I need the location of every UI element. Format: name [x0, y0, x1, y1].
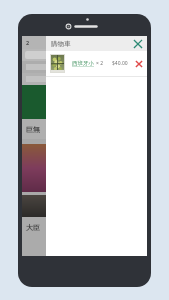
staticText: 西班牙小黃瓜: [72, 60, 96, 67]
button[interactable]: 西班牙小黃瓜: [46, 51, 147, 76]
staticText: 購物車: [51, 40, 71, 48]
staticText: × 2: [96, 60, 104, 67]
button[interactable]: Remove item: [134, 59, 144, 69]
staticText: 2: [26, 39, 30, 46]
staticText: 巨無: [26, 125, 40, 134]
button[interactable]: Close: [132, 38, 144, 50]
staticText: $40.00: [112, 60, 128, 67]
staticText: 大臣: [26, 223, 40, 232]
